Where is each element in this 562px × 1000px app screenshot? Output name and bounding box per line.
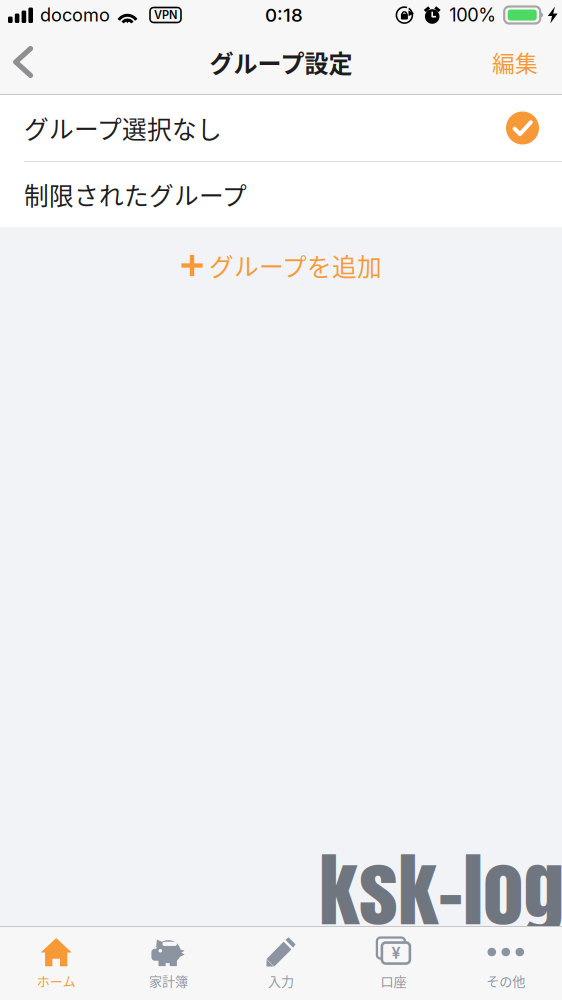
staticText: 家計簿 [149, 971, 188, 990]
staticText: 口座 [380, 971, 406, 990]
staticText: 0:18 [265, 4, 303, 26]
staticText: その他 [486, 971, 525, 990]
staticText: docomo [40, 4, 110, 26]
button[interactable]: ホーム [0, 927, 112, 1000]
staticText: ホーム [37, 971, 76, 990]
staticText: 編集 [492, 46, 538, 78]
button[interactable]: 家計簿 [112, 927, 225, 1000]
staticText: VPN [154, 8, 177, 22]
staticText: 入力 [268, 971, 294, 990]
button[interactable]: ¥ [337, 927, 450, 1000]
staticText: 100% [449, 4, 496, 26]
button[interactable]: 制限されたグループ [0, 162, 562, 227]
staticText: グループ設定 [209, 45, 352, 79]
button[interactable]: グループ選択なし [0, 95, 562, 161]
button[interactable]: グループを追加 [0, 227, 562, 304]
staticText: ¥ [391, 943, 400, 963]
button[interactable]: 編集 [468, 30, 562, 94]
button[interactable]: 戻る [0, 30, 46, 94]
staticText: グループ選択なし [24, 110, 222, 146]
button[interactable]: その他 [450, 927, 562, 1000]
staticText: 制限されたグループ [24, 177, 247, 212]
staticText: グループを追加 [209, 248, 382, 283]
staticText: ksk-log [319, 829, 562, 951]
button[interactable]: 入力 [225, 927, 337, 1000]
